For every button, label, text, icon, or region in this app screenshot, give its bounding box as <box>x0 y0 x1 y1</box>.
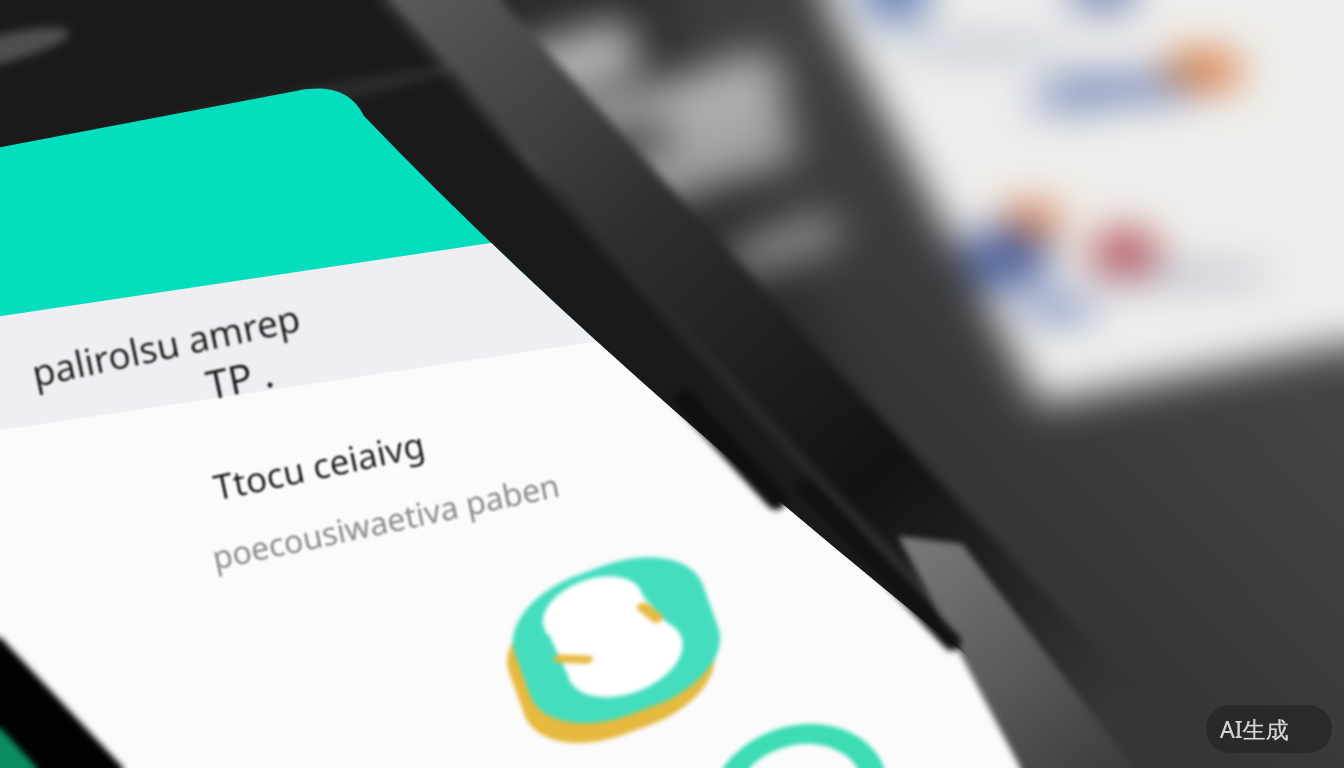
button[interactable]: Secure lock app icon <box>0 0 1344 768</box>
button[interactable] <box>0 0 1344 768</box>
